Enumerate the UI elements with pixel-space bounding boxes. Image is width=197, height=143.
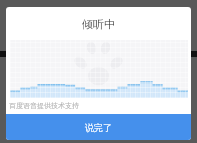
button[interactable]: 说完了 [6, 114, 191, 140]
staticText: 百度语音提供技术支持 [9, 101, 79, 110]
staticText: 说完了 [85, 122, 112, 133]
staticText: 倾听中 [82, 17, 115, 31]
